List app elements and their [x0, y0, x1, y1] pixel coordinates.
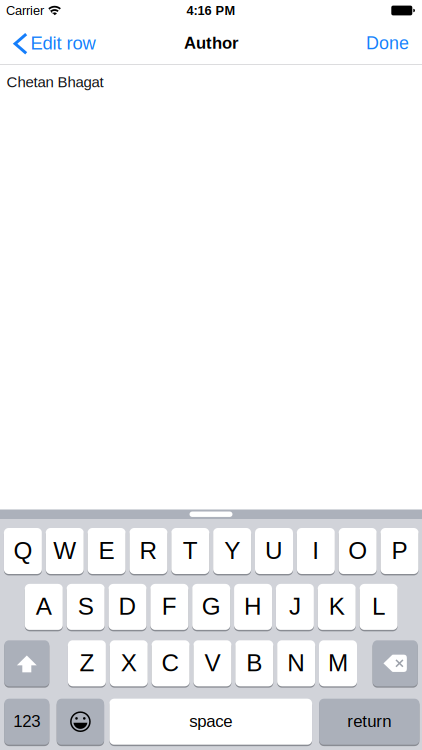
staticText: Chetan Bhagat: [6, 74, 103, 90]
button[interactable]: I: [297, 527, 335, 575]
staticText: Carrier: [6, 3, 44, 18]
staticText: return: [347, 712, 391, 731]
staticText: W: [53, 537, 76, 564]
staticText: O: [348, 537, 367, 564]
staticText: U: [265, 537, 283, 564]
staticText: T: [183, 537, 198, 564]
staticText: R: [139, 537, 157, 564]
button[interactable]: A: [25, 583, 63, 631]
button[interactable]: C: [152, 640, 190, 687]
button[interactable]: Y: [213, 527, 251, 575]
button[interactable]: R: [129, 527, 167, 575]
button[interactable]: E: [88, 527, 126, 575]
button[interactable]: K: [318, 583, 356, 631]
button[interactable]: P: [381, 527, 419, 575]
staticText: Q: [13, 537, 32, 564]
button[interactable]: Z: [68, 640, 106, 687]
staticText: A: [36, 593, 52, 620]
button[interactable]: Shift: [4, 640, 49, 687]
button[interactable]: D: [108, 583, 146, 631]
button[interactable]: Edit row: [0, 21, 105, 65]
button[interactable]: Done: [356, 21, 422, 65]
button[interactable]: space: [109, 698, 312, 745]
button[interactable]: 123: [4, 698, 49, 745]
staticText: X: [121, 649, 137, 676]
staticText: L: [372, 593, 385, 620]
staticText: space: [189, 712, 232, 731]
button[interactable]: N: [277, 640, 315, 687]
button[interactable]: G: [192, 583, 230, 631]
button[interactable]: O: [339, 527, 377, 575]
staticText: N: [287, 649, 305, 676]
staticText: 123: [13, 712, 40, 731]
button[interactable]: Q: [4, 527, 42, 575]
staticText: V: [204, 649, 220, 676]
staticText: K: [329, 593, 345, 620]
button[interactable]: Emoji keyboard: [57, 698, 104, 745]
staticText: Edit row: [30, 33, 95, 53]
button[interactable]: S: [67, 583, 105, 631]
button[interactable]: H: [234, 583, 272, 631]
button[interactable]: Delete: [373, 640, 418, 687]
staticText: D: [118, 593, 136, 620]
button[interactable]: F: [150, 583, 188, 631]
staticText: B: [246, 649, 262, 676]
button[interactable]: W: [46, 527, 84, 575]
staticText: C: [162, 649, 180, 676]
button[interactable]: L: [360, 583, 398, 631]
staticText: F: [162, 593, 177, 620]
staticText: Z: [79, 649, 94, 676]
staticText: G: [202, 593, 221, 620]
button[interactable]: B: [235, 640, 273, 687]
staticText: Author: [184, 34, 238, 52]
button[interactable]: M: [319, 640, 357, 687]
staticText: S: [78, 593, 94, 620]
staticText: M: [328, 649, 348, 676]
button[interactable]: T: [171, 527, 209, 575]
staticText: Y: [224, 537, 240, 564]
staticText: I: [312, 537, 319, 564]
button[interactable]: U: [255, 527, 293, 575]
staticText: J: [289, 593, 301, 620]
staticText: E: [99, 537, 115, 564]
button[interactable]: J: [276, 583, 314, 631]
button[interactable]: X: [110, 640, 148, 687]
button[interactable]: return: [319, 698, 419, 745]
button[interactable]: V: [193, 640, 231, 687]
staticText: P: [392, 537, 408, 564]
staticText: H: [244, 593, 262, 620]
staticText: 4:16 PM: [186, 3, 235, 18]
staticText: Done: [366, 33, 409, 53]
